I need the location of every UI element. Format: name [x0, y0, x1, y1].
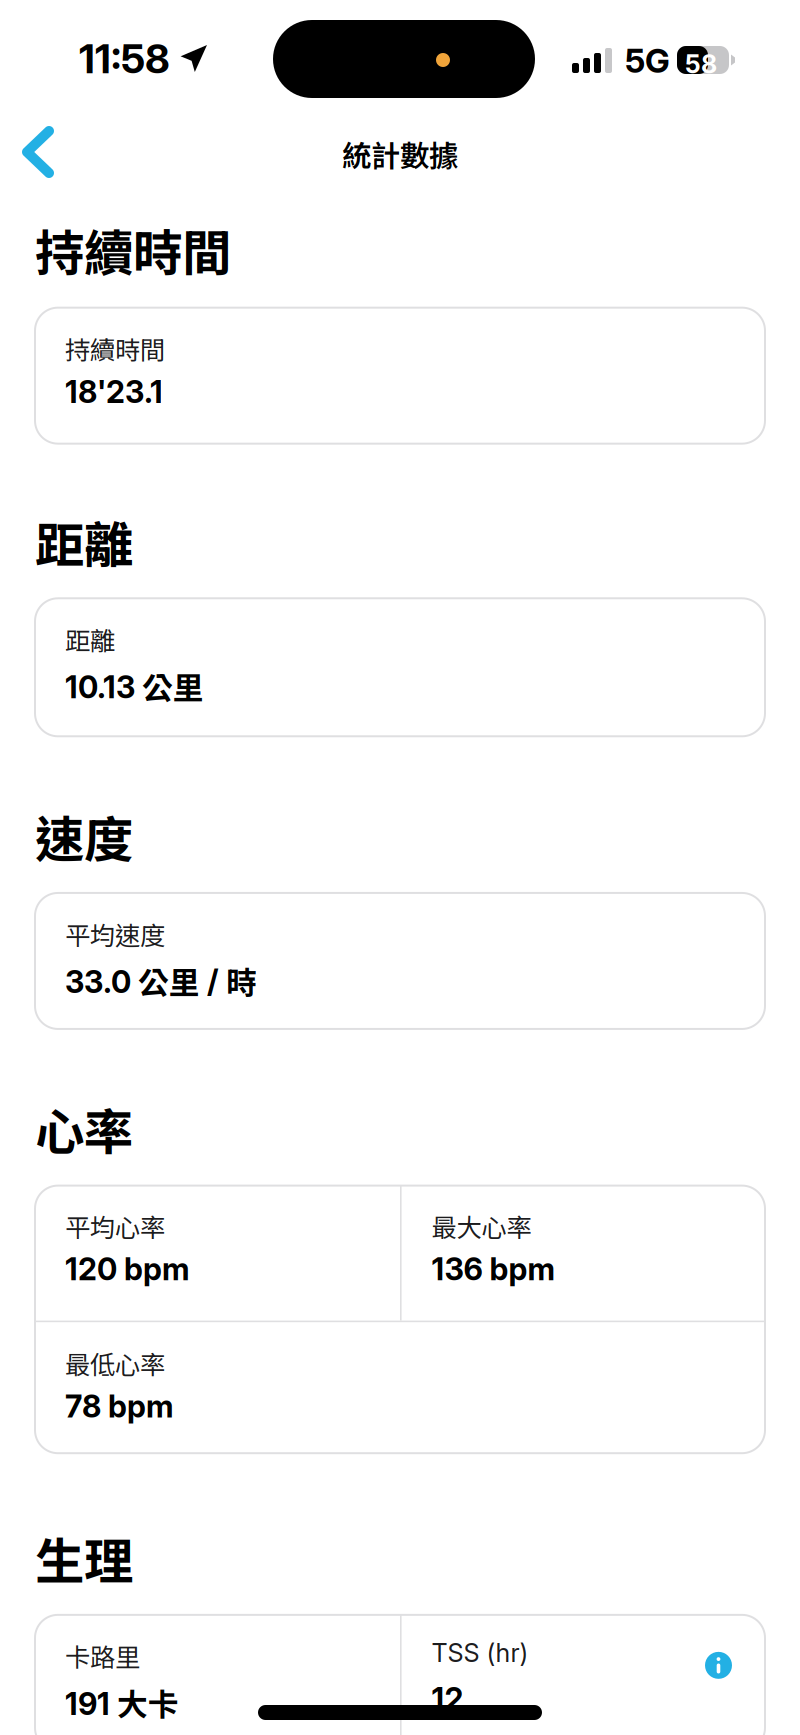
staticText: 速度 [35, 801, 133, 871]
staticText: 78 bpm [65, 1388, 174, 1424]
staticText: 距離 [65, 621, 115, 657]
staticText: 191 大卡 [65, 1681, 179, 1724]
staticText: 統計數據 [342, 133, 458, 174]
staticText: 33.0 公里 / 時 [65, 959, 257, 1002]
staticText: 平均速度 [65, 916, 165, 952]
staticText: 10.13 公里 [65, 664, 204, 708]
staticText: 5G [625, 41, 670, 80]
button[interactable]: About TSS [697, 1615, 742, 1679]
button[interactable]: Back [0, 122, 77, 192]
staticText: 136 bpm [432, 1251, 556, 1287]
staticText: 11:58 [79, 35, 170, 82]
staticText: 最低心率 [65, 1345, 165, 1381]
staticText: 生理 [35, 1523, 133, 1593]
staticText: 12 [432, 1681, 464, 1717]
staticText: 持續時間 [35, 215, 231, 285]
staticText: 120 bpm [65, 1251, 190, 1287]
staticText: 平均心率 [65, 1208, 165, 1244]
staticText: TSS (hr) [432, 1638, 529, 1668]
staticText: 18'23.1 [65, 374, 163, 410]
staticText: 距離 [35, 507, 133, 576]
staticText: 最大心率 [432, 1208, 532, 1244]
staticText: 卡路里 [65, 1638, 140, 1674]
staticText: 心率 [35, 1094, 133, 1163]
staticText: 持續時間 [65, 331, 165, 366]
staticText: 58 [685, 49, 717, 79]
